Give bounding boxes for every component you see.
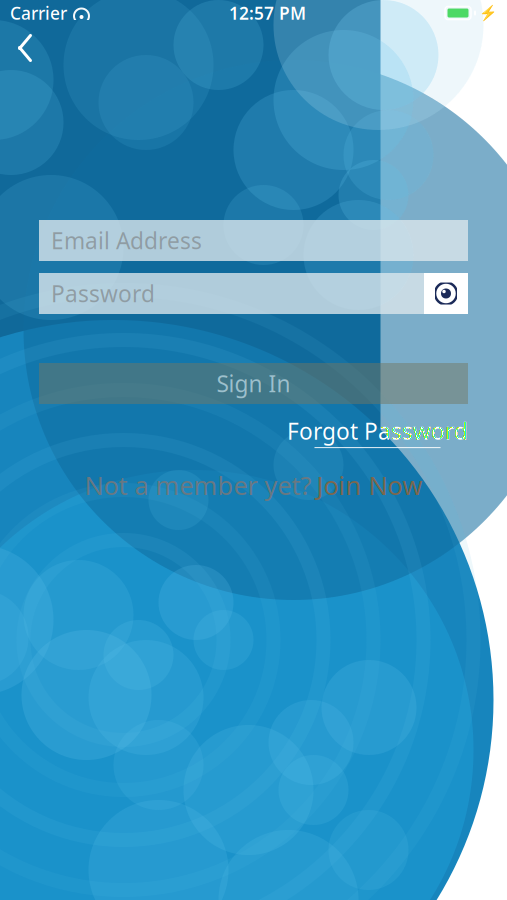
button[interactable]: Sign In [39, 363, 468, 404]
staticText: Email Address [51, 225, 202, 255]
staticText: Forgot Password [287, 416, 468, 446]
staticText: Sign In [216, 368, 290, 398]
staticText: Join Now [316, 468, 422, 502]
staticText: ⚡ [479, 5, 497, 21]
button[interactable]: Forgot Password [287, 416, 468, 448]
staticText: 12:57 PM [229, 1, 306, 24]
button[interactable]: Back [0, 26, 50, 70]
button[interactable]: Not a member yet? [39, 470, 468, 500]
staticText: Carrier [10, 1, 67, 24]
button[interactable]: Email Address [39, 220, 468, 261]
staticText: Not a member yet? [84, 468, 311, 502]
button[interactable]: Password [39, 273, 424, 314]
staticText: Password [51, 278, 155, 308]
button[interactable]: Show password [424, 273, 468, 314]
